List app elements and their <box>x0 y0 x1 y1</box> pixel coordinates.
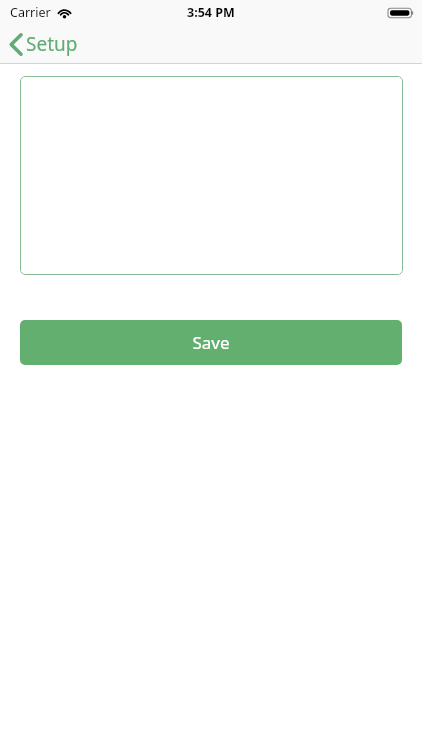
button[interactable] <box>20 76 403 275</box>
staticText: Setup <box>26 31 78 57</box>
button[interactable]: Setup <box>0 27 88 61</box>
staticText: Save <box>192 331 230 354</box>
button[interactable]: Save <box>20 320 402 365</box>
staticText: Carrier <box>10 4 51 21</box>
staticText: 3:54 PM <box>187 4 235 21</box>
